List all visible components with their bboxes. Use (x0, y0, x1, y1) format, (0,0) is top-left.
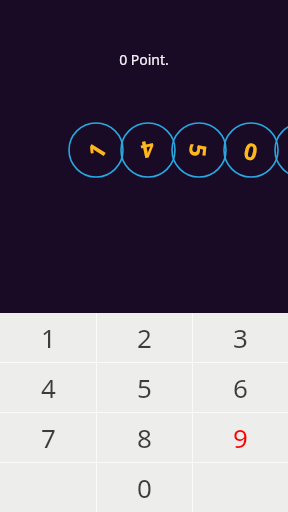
staticText: 9 (233, 420, 248, 455)
staticText: 4 (138, 134, 158, 167)
button[interactable]: 1 (0, 313, 96, 362)
button[interactable]: 6 (193, 363, 288, 412)
button[interactable]: 1 (68, 122, 124, 178)
button[interactable]: 2 (97, 313, 192, 362)
button[interactable]: 7 (0, 413, 96, 462)
staticText: 8 (137, 420, 152, 455)
staticText: 5 (137, 370, 152, 405)
staticText: 7 (41, 420, 56, 455)
button[interactable]: 0 (223, 122, 279, 178)
button[interactable]: 3 (193, 313, 288, 362)
staticText: 6 (233, 370, 248, 405)
staticText: 1 (41, 320, 56, 355)
button[interactable]: 7 (274, 122, 288, 178)
staticText: 0 (241, 134, 261, 167)
button[interactable]: 9 (193, 413, 288, 462)
staticText: 5 (183, 142, 215, 159)
button[interactable]: 4 (120, 122, 176, 178)
button[interactable]: 5 (97, 363, 192, 412)
button[interactable]: 0 (97, 463, 192, 512)
staticText: 0 (137, 470, 152, 505)
button[interactable]: 4 (0, 363, 96, 412)
staticText: 3 (233, 320, 248, 355)
button[interactable]: 5 (171, 122, 227, 178)
button[interactable]: 8 (97, 413, 192, 462)
staticText: 2 (137, 320, 152, 355)
staticText: 0 Point. (119, 50, 169, 69)
staticText: 4 (41, 370, 56, 405)
staticText: 1 (79, 136, 113, 165)
